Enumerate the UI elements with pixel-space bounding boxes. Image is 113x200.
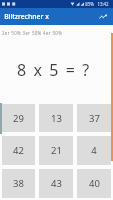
- button[interactable]: 43: [39, 169, 73, 198]
- staticText: Blitzrechner x: [4, 12, 49, 21]
- button[interactable]: 4: [77, 136, 111, 165]
- staticText: 38: [13, 177, 24, 190]
- staticText: 40: [89, 177, 100, 190]
- button[interactable]: 21: [39, 136, 73, 165]
- staticText: 13:42: [97, 1, 109, 7]
- button[interactable]: 13: [39, 104, 73, 132]
- button[interactable]: 38: [2, 169, 35, 198]
- staticText: 8 x 5 = ?: [17, 59, 91, 81]
- staticText: 43: [51, 177, 62, 190]
- staticText: 42: [13, 144, 24, 157]
- staticText: 4: [91, 144, 97, 157]
- staticText: 13: [51, 112, 62, 125]
- button[interactable]: 29: [2, 104, 35, 132]
- button[interactable]: 42: [2, 136, 35, 165]
- button[interactable]: 37: [77, 104, 111, 132]
- staticText: 21: [51, 144, 62, 157]
- staticText: 85%: [85, 1, 94, 7]
- button[interactable]: 40: [77, 169, 111, 198]
- staticText: 2er 50% 3er 50% 4er 50%: [2, 30, 63, 36]
- staticText: 37: [89, 112, 100, 125]
- button[interactable]: Statistics: [94, 8, 111, 25]
- staticText: 29: [13, 112, 24, 125]
